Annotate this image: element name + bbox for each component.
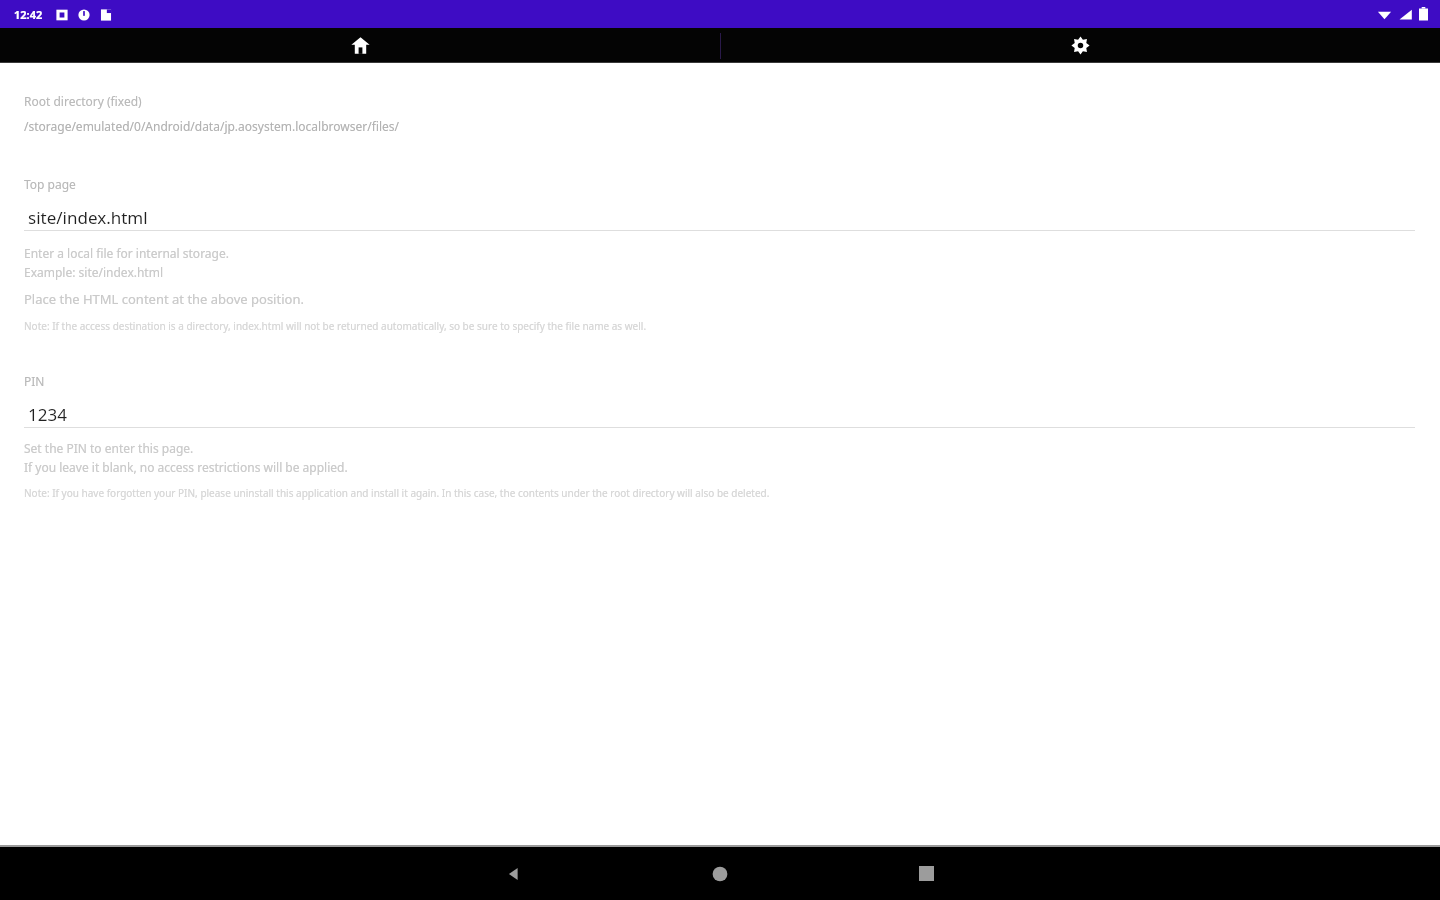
button[interactable]: 1234 [24,401,1416,427]
button[interactable]: Back [411,847,617,900]
staticText: Top page [24,176,76,192]
staticText: Place the HTML content at the above posi… [24,290,304,308]
staticText: Root directory (fixed) [24,93,142,109]
staticText: Note: If you have forgotten your PIN, pl… [24,486,770,500]
staticText: Example: site/index.html [24,264,164,280]
staticText: 12:42 [14,7,43,22]
button[interactable]: Home [0,28,720,63]
staticText: /storage/emulated/0/Android/data/jp.aosy… [24,118,399,134]
button[interactable]: Recent apps [823,847,1029,900]
staticText: Enter a local file for internal storage. [24,245,229,261]
staticText: Set the PIN to enter this page. [24,440,194,456]
button[interactable]: Settings [720,28,1440,63]
staticText: 1234 [28,403,67,426]
staticText: If you leave it blank, no access restric… [24,459,348,475]
staticText: PIN [24,373,45,389]
staticText: site/index.html [28,206,148,229]
button[interactable]: site/index.html [24,204,1416,230]
button[interactable]: Home [617,847,823,900]
staticText: Note: If the access destination is a dir… [24,319,647,333]
